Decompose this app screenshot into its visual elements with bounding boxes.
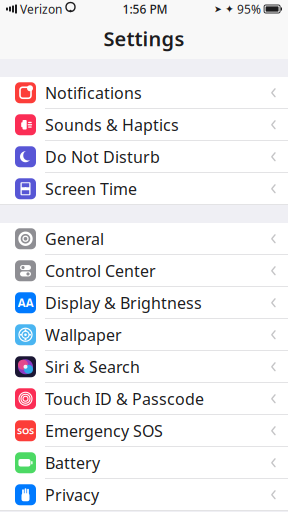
staticText: Sounds & Haptics	[45, 114, 179, 135]
button[interactable]: Touch ID & Passcode	[0, 383, 288, 415]
staticText: Notifications	[45, 82, 142, 103]
staticText: Do Not Disturb	[45, 146, 160, 167]
staticText: 1:56 PM	[122, 1, 167, 17]
button[interactable]: SOS	[0, 415, 288, 447]
staticText: Emergency SOS	[45, 420, 163, 441]
staticText: Verizon	[20, 1, 62, 17]
staticText: General	[45, 228, 104, 249]
button[interactable]: Control Center	[0, 255, 288, 287]
button[interactable]: General	[0, 223, 288, 255]
button[interactable]: Do Not Disturb	[0, 141, 288, 173]
button[interactable]: Battery	[0, 447, 288, 479]
staticText: 95%	[237, 1, 261, 17]
staticText: Screen Time	[45, 178, 137, 199]
button[interactable]: AA	[0, 287, 288, 319]
button[interactable]: Notifications	[0, 77, 288, 109]
staticText: AA	[17, 295, 33, 311]
button[interactable]: Privacy	[0, 479, 288, 511]
staticText: Privacy	[45, 484, 99, 505]
staticText: ➤	[214, 4, 222, 14]
staticText: Wallpaper	[45, 324, 122, 345]
staticText: Siri & Search	[45, 356, 140, 377]
button[interactable]: Screen Time	[0, 173, 288, 205]
staticText: Touch ID & Passcode	[45, 388, 204, 409]
staticText: Settings	[103, 25, 184, 52]
button[interactable]: Siri & Search	[0, 351, 288, 383]
staticText: Display & Brightness	[45, 292, 202, 313]
staticText: Battery	[45, 452, 100, 473]
staticText: ✦	[225, 3, 234, 15]
button[interactable]: Wallpaper	[0, 319, 288, 351]
staticText: Control Center	[45, 260, 156, 281]
button[interactable]: Sounds & Haptics	[0, 109, 288, 141]
staticText: SOS	[17, 425, 34, 437]
